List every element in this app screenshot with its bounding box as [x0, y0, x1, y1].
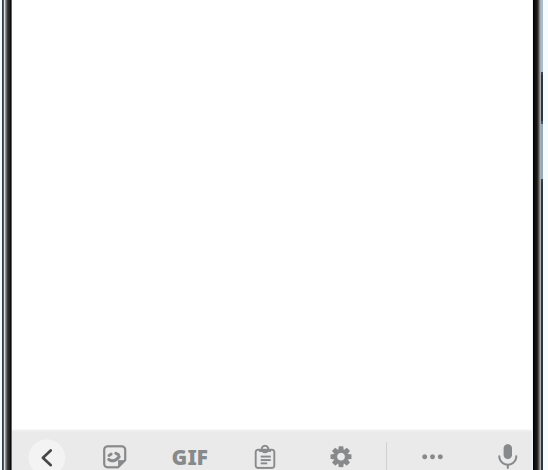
button[interactable]: More options: [415, 440, 449, 470]
button[interactable]: Settings: [324, 440, 358, 470]
button[interactable]: Clipboard: [248, 441, 282, 470]
staticText: GIF: [171, 443, 207, 470]
button[interactable]: Voice input: [491, 439, 525, 470]
button[interactable]: Stickers: [98, 440, 132, 470]
button[interactable]: Back: [28, 439, 65, 470]
button[interactable]: GIF: [167, 440, 211, 470]
